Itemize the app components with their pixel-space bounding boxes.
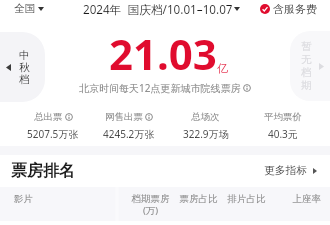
staticText: 全国 xyxy=(14,2,35,15)
staticText: 40.3元 xyxy=(268,127,298,141)
button[interactable]: 总场次 xyxy=(167,111,244,141)
button[interactable]: 网售出票 xyxy=(91,111,167,141)
staticText: 322.9万场 xyxy=(183,127,229,141)
button[interactable]: 总出票 xyxy=(15,111,91,141)
button[interactable]: 平均票价 xyxy=(244,111,321,141)
staticText: 票房排名 xyxy=(11,161,75,181)
staticText: 4245.2万张 xyxy=(103,127,155,141)
button[interactable]: 中 秋 档 xyxy=(0,32,45,102)
button[interactable]: 2024年 国庆档/10.01–10.07 xyxy=(83,1,240,16)
staticText: 含服务费 xyxy=(273,2,317,16)
staticText: 总场次 xyxy=(191,111,220,123)
staticText: 上座率 xyxy=(271,193,321,205)
staticText: 影片 xyxy=(14,193,33,205)
staticText: 暂 无 档 期 xyxy=(301,40,312,92)
staticText: 中 秋 档 xyxy=(19,49,30,86)
staticText: 总出票 xyxy=(34,111,63,123)
staticText: 平均票价 xyxy=(264,111,302,123)
button[interactable]: 全国 xyxy=(14,1,44,16)
button[interactable]: 暂 无 档 期 xyxy=(290,31,330,101)
staticText: 档期票房 (万) xyxy=(126,193,175,216)
staticText: 排片占比 xyxy=(222,193,271,205)
staticText: 5207.5万张 xyxy=(27,127,79,141)
staticText: 网售出票 xyxy=(105,111,143,123)
staticText: 2024年 国庆档/10.01–10.07 xyxy=(83,1,233,16)
button[interactable]: 含服务费 xyxy=(260,1,317,16)
staticText: 票房占比 xyxy=(174,193,223,205)
staticText: 更多指标 xyxy=(264,164,308,178)
staticText: 21.03 xyxy=(109,25,217,82)
button[interactable]: 更多指标 xyxy=(264,164,317,178)
staticText: 北京时间每天12点更新城市院线票房 xyxy=(79,81,241,95)
staticText: 亿 xyxy=(217,61,228,75)
